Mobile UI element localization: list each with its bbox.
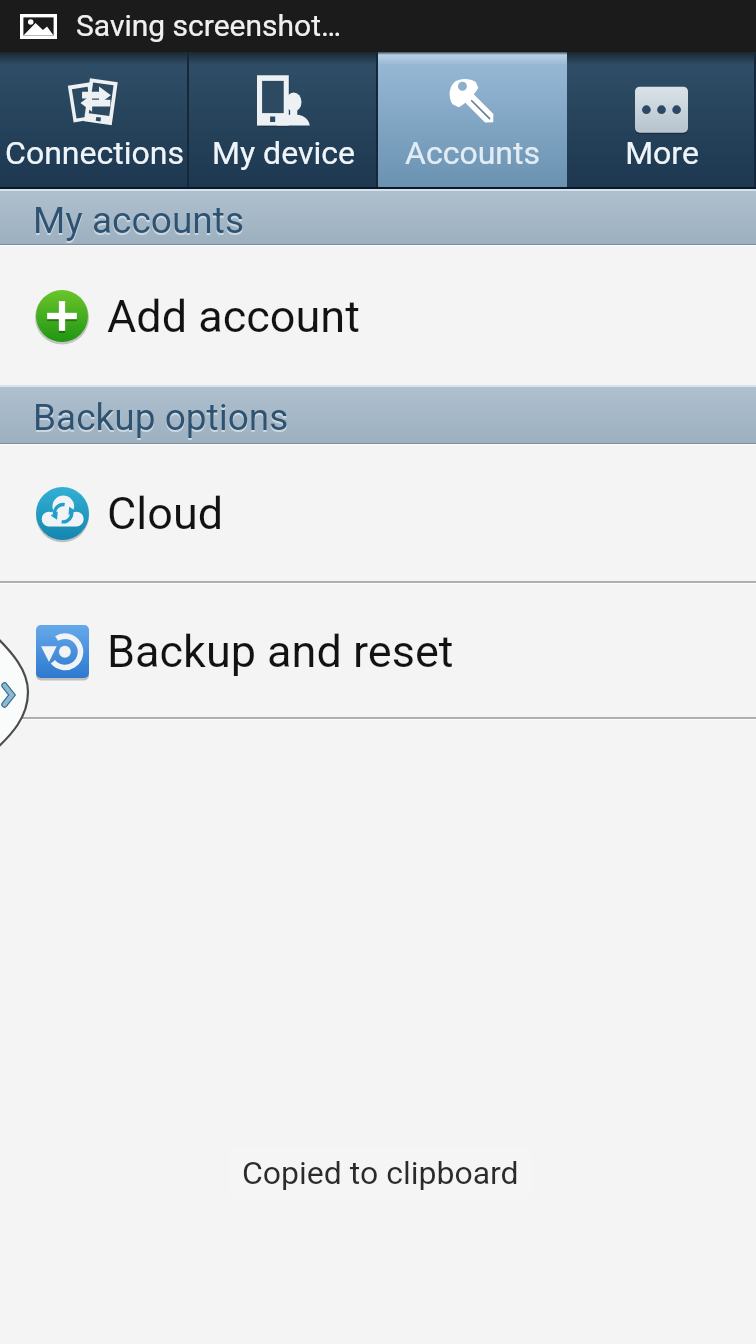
staticText: More	[625, 134, 699, 172]
button[interactable]: Backup and reset	[0, 584, 756, 717]
staticText: Saving screenshot…	[76, 8, 342, 43]
staticText: Accounts	[405, 134, 540, 172]
button[interactable]: Add account	[0, 246, 756, 385]
staticText: Cloud	[107, 487, 224, 540]
other: Open edge panel	[0, 0, 756, 1344]
staticText: Connections	[5, 134, 184, 172]
button[interactable]: My device	[189, 52, 378, 187]
button[interactable]: Accounts	[378, 52, 567, 187]
staticText: Add account	[107, 290, 360, 343]
button[interactable]: More	[567, 52, 756, 187]
staticText: My device	[212, 134, 355, 172]
staticText: My accounts	[33, 199, 244, 242]
staticText: Copied to clipboard	[242, 1154, 519, 1192]
button[interactable]: Cloud	[0, 445, 756, 581]
staticText: Backup options	[33, 396, 289, 439]
button[interactable]: Connections	[0, 52, 189, 187]
staticText: Backup and reset	[107, 625, 454, 678]
staticText: Backup options	[33, 398, 289, 441]
staticText: My accounts	[33, 201, 244, 244]
